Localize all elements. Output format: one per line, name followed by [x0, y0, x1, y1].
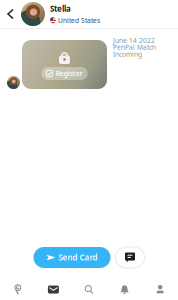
button[interactable]: Chat — [115, 247, 144, 268]
staticText: Incoming — [113, 50, 142, 59]
staticText: Register — [56, 69, 83, 78]
button[interactable]: Mail — [36, 279, 71, 300]
button[interactable]: Notifications — [107, 279, 142, 300]
button[interactable]: Send Card — [33, 247, 110, 268]
staticText: Send Card — [58, 252, 97, 263]
staticText: June 14 2022 — [113, 36, 155, 45]
button[interactable]: Ideas — [0, 279, 36, 300]
button[interactable]: Register — [41, 67, 88, 80]
staticText: PenPal Match — [113, 43, 156, 52]
staticText: Stella — [50, 3, 71, 14]
button[interactable]: Search — [71, 279, 107, 300]
button[interactable]: Profile — [142, 279, 178, 300]
staticText: United States — [58, 16, 100, 25]
button[interactable]: Back — [0, 0, 21, 28]
